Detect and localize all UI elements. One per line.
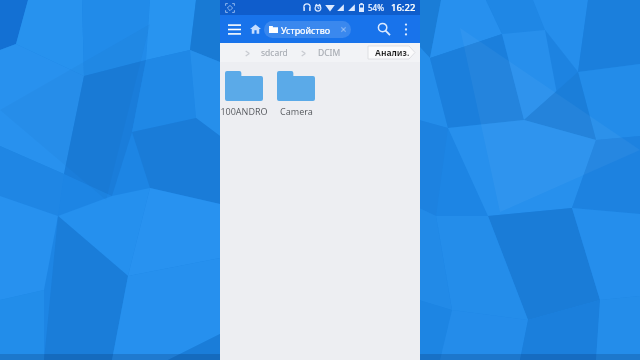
staticText: 100ANDRO xyxy=(220,105,268,117)
staticText: Camera xyxy=(280,105,313,117)
staticText: 16:22 xyxy=(391,1,416,14)
button[interactable]: Camera xyxy=(270,71,322,117)
staticText: 54% xyxy=(368,2,384,13)
button[interactable]: Анализ. xyxy=(368,46,415,59)
staticText: DCIM xyxy=(318,47,341,59)
staticText: Анализ. xyxy=(375,47,410,59)
button[interactable]: 100ANDRO xyxy=(218,71,270,117)
staticText: sdcard xyxy=(261,47,288,59)
button[interactable]: Устройство xyxy=(264,21,351,38)
button[interactable]: Home xyxy=(247,17,263,41)
button[interactable]: Search xyxy=(373,17,395,41)
button[interactable]: More options xyxy=(398,17,414,41)
button[interactable]: Navigation menu xyxy=(224,17,244,41)
staticText: Устройство xyxy=(281,24,331,36)
